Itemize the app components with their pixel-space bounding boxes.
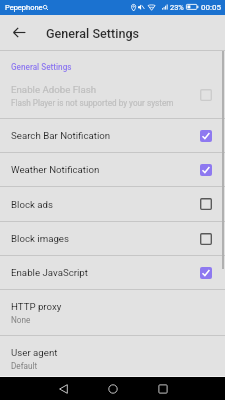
button[interactable]: Enable Adobe Flash bbox=[0, 79, 225, 118]
button[interactable]: Block ads bbox=[0, 187, 225, 221]
staticText: None bbox=[11, 315, 31, 325]
staticText: General Settings bbox=[11, 62, 72, 72]
button[interactable]: Enable JavaScript bbox=[0, 256, 225, 289]
staticText: HTTP proxy bbox=[11, 301, 62, 312]
button[interactable]: Search Bar Notification bbox=[0, 119, 225, 152]
staticText: Enable JavaScript bbox=[11, 267, 88, 278]
staticText: Weather Notification bbox=[11, 164, 100, 175]
staticText: General Settings bbox=[46, 26, 140, 41]
staticText: Block ads bbox=[11, 199, 54, 210]
button[interactable]: Navigate up bbox=[0, 15, 38, 50]
button[interactable]: Back bbox=[38, 377, 88, 400]
button[interactable]: User agent bbox=[0, 336, 225, 376]
staticText: 23% bbox=[170, 3, 184, 12]
button[interactable]: Weather Notification bbox=[0, 153, 225, 186]
staticText: Flash Player is not supported by your sy… bbox=[11, 98, 174, 108]
staticText: Default bbox=[11, 361, 38, 371]
button[interactable]: HTTP proxy bbox=[0, 290, 225, 335]
staticText: User agent bbox=[11, 347, 58, 358]
staticText: Enable Adobe Flash bbox=[11, 84, 97, 95]
button[interactable]: Home bbox=[88, 377, 138, 400]
button[interactable]: Block images bbox=[0, 222, 225, 255]
staticText: Search Bar Notification bbox=[11, 130, 111, 141]
staticText: 00:05 bbox=[201, 3, 221, 12]
staticText: Pepephone bbox=[5, 3, 43, 12]
staticText: Block images bbox=[11, 233, 69, 244]
button[interactable]: Recent apps bbox=[138, 377, 188, 400]
